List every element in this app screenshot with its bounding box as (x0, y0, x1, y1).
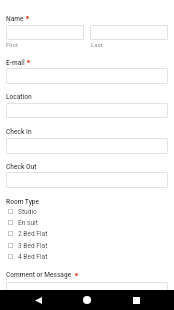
staticText: Name (6, 15, 24, 23)
button[interactable]: Home (76, 290, 98, 310)
button[interactable] (6, 138, 168, 154)
staticText: 4 Bed Flat (18, 253, 48, 261)
staticText: Location (6, 93, 32, 101)
button[interactable]: 2 Bed Flat (8, 228, 78, 239)
button[interactable]: En suit (8, 217, 78, 228)
button[interactable]: Back (27, 290, 49, 310)
staticText: Last (91, 41, 103, 48)
staticText: E-mail (6, 59, 25, 67)
staticText: Check In (6, 128, 32, 136)
button[interactable] (6, 68, 168, 84)
button[interactable] (90, 25, 168, 40)
button[interactable] (6, 103, 168, 118)
button[interactable] (6, 25, 84, 40)
button[interactable]: Studio (8, 206, 78, 217)
staticText: Room Type (6, 198, 40, 206)
button[interactable]: Recent apps (125, 290, 147, 310)
staticText: 3 Bed Flat (18, 242, 48, 250)
button[interactable] (6, 172, 168, 188)
button[interactable]: 4 Bed Flat (8, 251, 78, 262)
button[interactable] (6, 282, 168, 298)
button[interactable]: 3 Bed Flat (8, 240, 78, 251)
staticText: Check Out (6, 163, 37, 171)
staticText: Comment or Message (6, 271, 72, 279)
staticText: Studio (18, 208, 37, 216)
staticText: 2 Bed Flat (18, 230, 48, 238)
staticText: First (6, 41, 18, 48)
staticText: En suit (18, 219, 38, 227)
